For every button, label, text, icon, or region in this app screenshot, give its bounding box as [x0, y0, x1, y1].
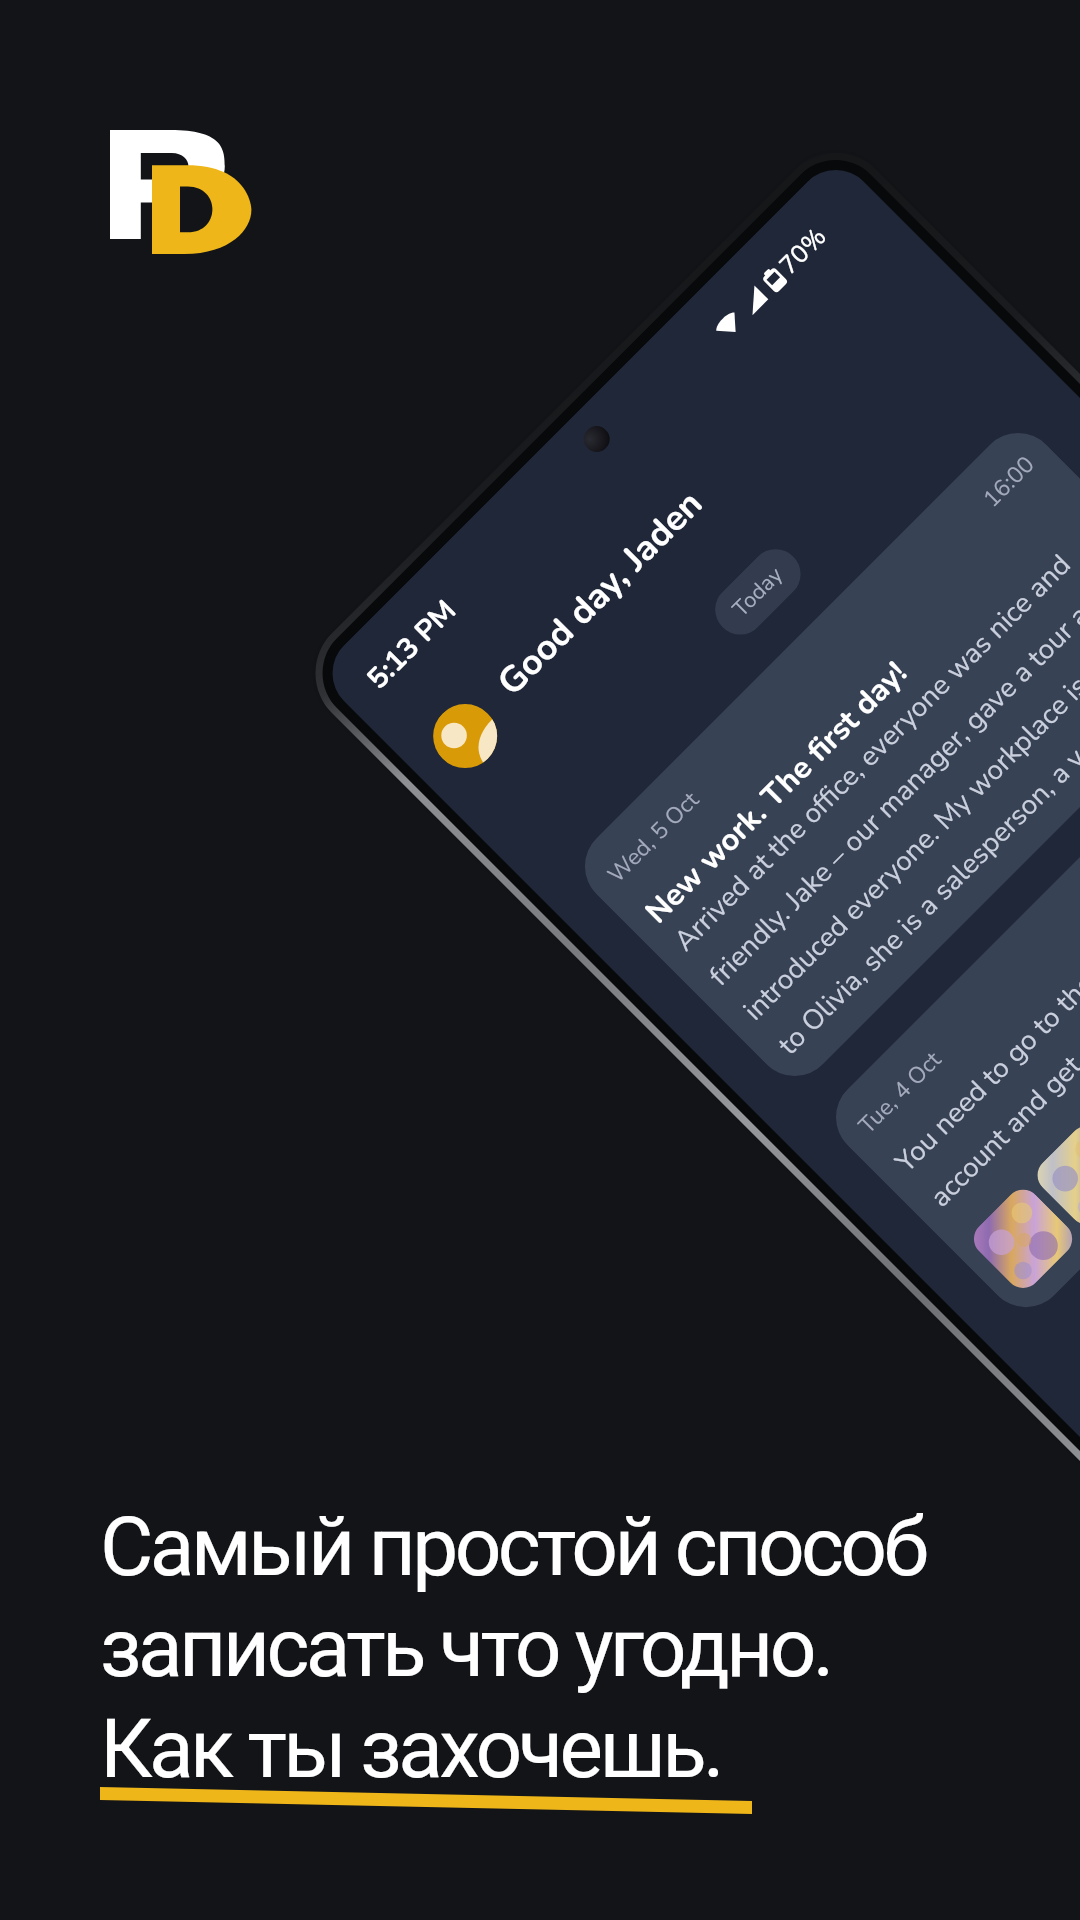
- staticText: Самый простой способ записать что угодно…: [100, 1499, 926, 1797]
- staticText: 5:13 PM: [358, 591, 466, 699]
- staticText: 70%: [772, 220, 834, 282]
- staticText: Today: [726, 560, 790, 624]
- button[interactable]: App logo: [110, 130, 250, 254]
- button[interactable]: Profile: [420, 691, 510, 781]
- staticText: Wed, 5 Oct: [601, 785, 706, 890]
- button[interactable]: Tue, 4 Oct: [819, 667, 1080, 1324]
- button[interactable]: Wed, 5 Oct: [568, 416, 1080, 1092]
- staticText: New work. The first day!: [636, 653, 916, 933]
- button[interactable]: Today: [705, 539, 811, 645]
- staticText: Arrived at the office, everyone was nice…: [666, 539, 1080, 1063]
- staticText: You need to go to the bank, open an acco…: [887, 836, 1080, 1215]
- staticText: Good day, Jaden: [487, 480, 713, 706]
- staticText: 16:00: [976, 449, 1041, 514]
- staticText: Tue, 4 Oct: [852, 1044, 948, 1141]
